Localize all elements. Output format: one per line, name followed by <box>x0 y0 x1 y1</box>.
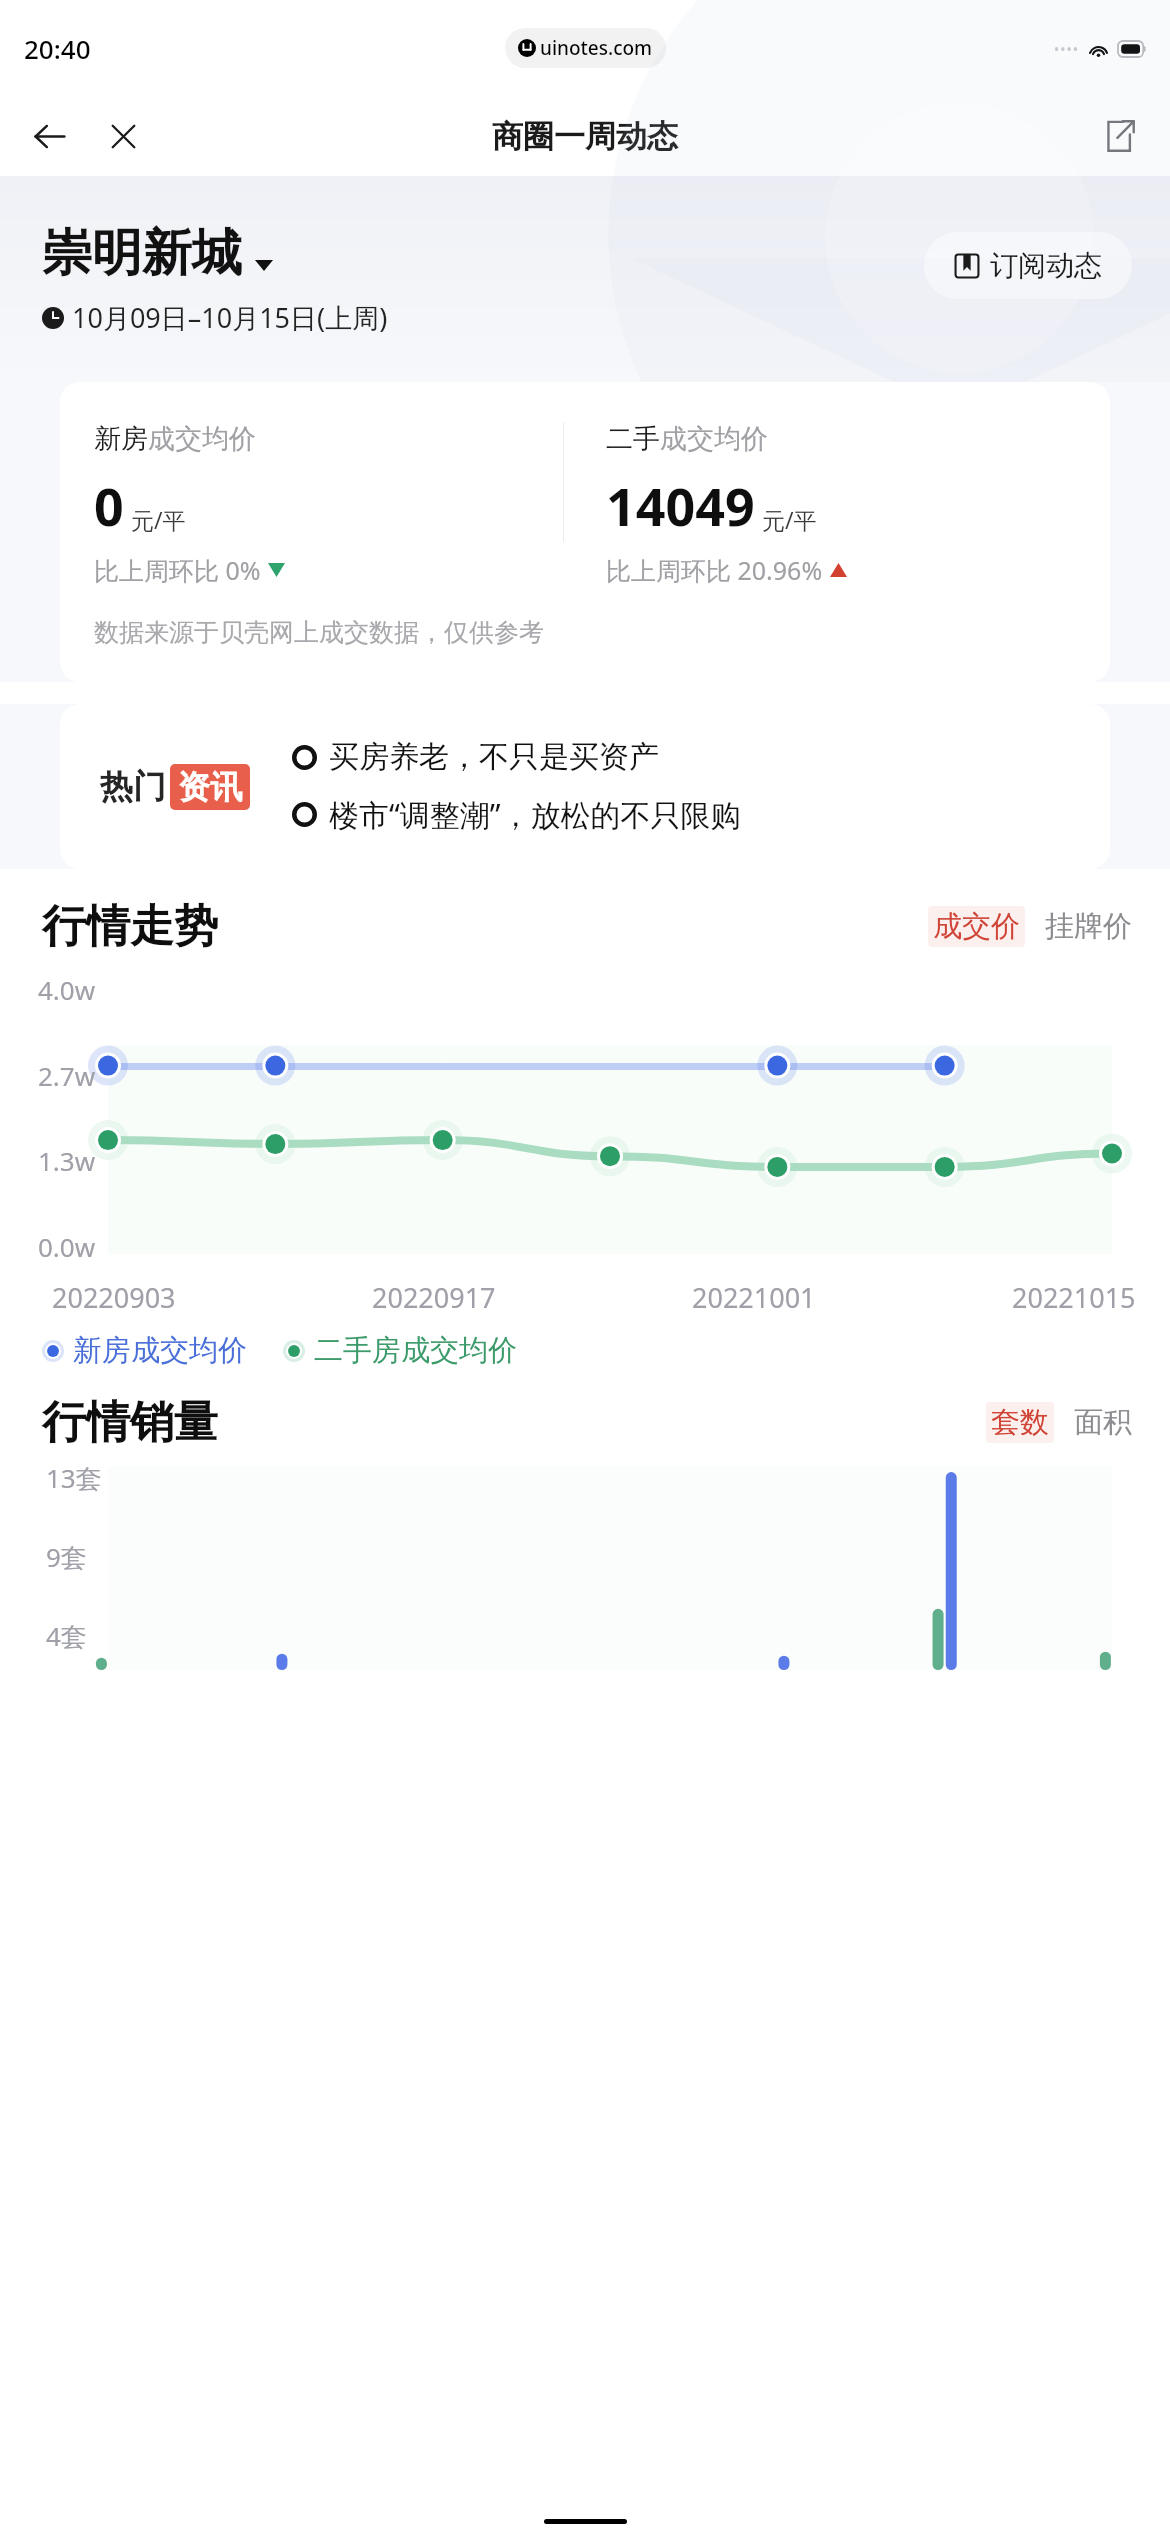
button[interactable]: 热门 <box>60 704 1110 869</box>
button[interactable]: Close <box>98 111 148 161</box>
button[interactable]: Back <box>24 111 74 161</box>
staticText: 商圈一周动态 <box>492 117 678 156</box>
button[interactable]: 新房成交均价 <box>42 1332 247 1369</box>
staticText: 14049 <box>606 470 755 541</box>
staticText: 买房养老，不只是买资产 <box>329 738 659 776</box>
staticText: 2.7w <box>38 1058 96 1093</box>
staticText: 订阅动态 <box>990 248 1102 283</box>
staticText: 数据来源于贝壳网上成交数据，仅供参考 <box>94 617 544 648</box>
staticText: 9套 <box>46 1539 87 1575</box>
staticText: 新房成交均价 <box>73 1332 247 1369</box>
staticText: 行情走势 <box>42 899 218 954</box>
staticText: 4.0w <box>38 972 96 1007</box>
button[interactable]: 买房养老，不只是买资产 <box>292 738 659 776</box>
button[interactable]: Share <box>1092 109 1146 163</box>
staticText: 0.0w <box>38 1229 96 1264</box>
staticText: 面积 <box>1074 1404 1132 1441</box>
staticText: 二手 <box>606 422 660 456</box>
button[interactable]: 楼市“调整潮”，放松的不只限购 <box>292 794 741 835</box>
staticText: 13套 <box>46 1460 102 1496</box>
staticText: 元/平 <box>762 504 817 535</box>
staticText: 0 <box>94 470 124 541</box>
button[interactable]: 二手房成交均价 <box>283 1332 517 1369</box>
button[interactable]: 面积 <box>1074 1402 1132 1443</box>
button[interactable]: 套数 <box>986 1402 1054 1443</box>
staticText: 比上周环比 0% <box>94 553 261 587</box>
staticText: 20:40 <box>24 31 91 66</box>
staticText: 元/平 <box>131 504 186 535</box>
staticText: 1.3w <box>38 1143 96 1178</box>
staticText: 二手房成交均价 <box>314 1332 517 1369</box>
staticText: 成交价 <box>933 908 1020 945</box>
button[interactable]: 挂牌价 <box>1045 906 1132 947</box>
button[interactable]: 订阅动态 <box>924 232 1132 299</box>
staticText: 套数 <box>991 1404 1049 1441</box>
staticText: 资讯 <box>178 767 242 807</box>
staticText: 20221001 <box>692 1279 816 1316</box>
staticText: 新房 <box>94 422 148 456</box>
staticText: 楼市“调整潮”，放松的不只限购 <box>329 794 741 835</box>
button[interactable]: 成交价 <box>928 906 1025 947</box>
button[interactable]: 新房 <box>60 382 1110 682</box>
staticText: 行情销量 <box>42 1395 218 1450</box>
staticText: 20221015 <box>1012 1279 1136 1316</box>
staticText: 热门 <box>100 766 166 808</box>
staticText: 成交均价 <box>660 422 768 456</box>
staticText: uinotes.com <box>540 35 653 61</box>
staticText: 20220917 <box>372 1279 496 1316</box>
staticText: 20220903 <box>52 1279 176 1316</box>
staticText: 10月09日–10月15日(上周) <box>72 299 388 336</box>
staticText: 崇明新城 <box>42 222 242 285</box>
staticText: 成交均价 <box>148 422 256 456</box>
staticText: 挂牌价 <box>1045 908 1132 945</box>
staticText: 比上周环比 20.96% <box>606 553 823 587</box>
staticText: 4套 <box>46 1618 87 1654</box>
